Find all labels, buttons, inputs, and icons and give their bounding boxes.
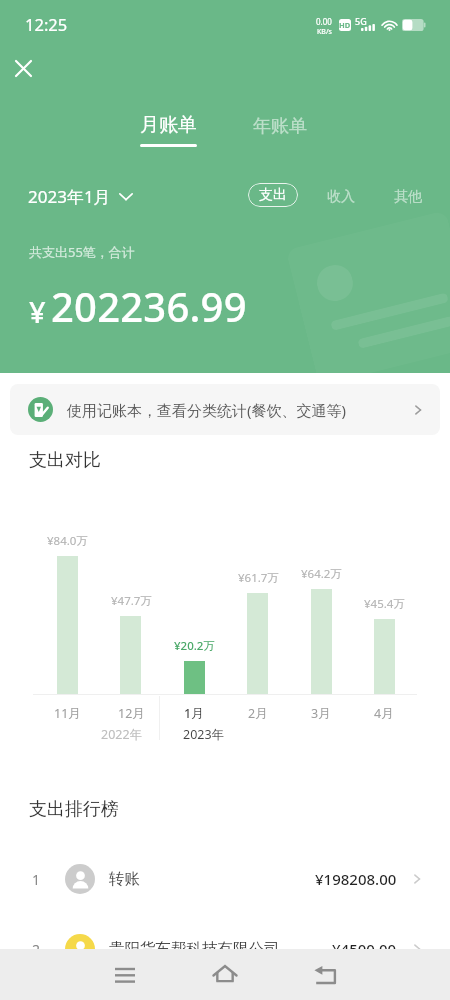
staticText: ¥198208.00 <box>315 869 397 889</box>
staticText: 月账单 <box>140 113 197 137</box>
staticText: ¥20.2万 <box>174 638 215 654</box>
staticText: 2023年1月 <box>28 185 111 208</box>
button[interactable]: Recent apps <box>75 949 175 1000</box>
staticText: 支出排行榜 <box>29 798 119 821</box>
staticText: 使用记账本，查看分类统计(餐饮、交通等) <box>67 400 347 420</box>
staticText: 5G <box>355 15 367 27</box>
button[interactable]: 支出 <box>248 183 298 207</box>
staticText: ¥47.7万 <box>111 593 152 609</box>
button[interactable]: Close <box>10 55 36 81</box>
staticText: 1月 <box>184 705 204 722</box>
staticText: 贵阳货车帮科技有限公司 <box>109 939 280 959</box>
button[interactable]: 其他 <box>389 186 427 208</box>
staticText: 收入 <box>327 188 355 206</box>
staticText: 年账单 <box>253 115 307 138</box>
button[interactable]: Back <box>275 949 375 1000</box>
staticText: 2022年 <box>101 726 143 743</box>
button[interactable]: 月账单 <box>132 107 205 153</box>
button[interactable]: 2023年1月 <box>22 181 139 212</box>
staticText: 12月 <box>118 705 145 722</box>
staticText: 2 <box>32 940 41 959</box>
staticText: ¥45.4万 <box>364 596 405 612</box>
staticText: KB/s <box>317 27 332 37</box>
button[interactable]: 使用记账本，查看分类统计(餐饮、交通等) <box>10 384 440 435</box>
staticText: 3月 <box>311 705 331 722</box>
button[interactable]: 收入 <box>322 186 360 208</box>
staticText: 支出对比 <box>29 449 101 472</box>
staticText: 12:25 <box>25 13 68 35</box>
staticText: 转账 <box>109 869 140 889</box>
staticText: 共支出55笔，合计 <box>29 243 135 261</box>
button[interactable]: 2 <box>0 914 450 984</box>
staticText: ¥84.0万 <box>47 533 88 549</box>
staticText: 0.00 <box>316 16 332 27</box>
staticText: ¥ <box>29 292 46 331</box>
staticText: 2月 <box>248 705 268 722</box>
staticText: 4月 <box>374 705 394 722</box>
staticText: 11月 <box>54 705 81 722</box>
staticText: 202236.99 <box>51 279 247 333</box>
staticText: 1 <box>32 870 41 889</box>
staticText: ¥64.2万 <box>301 566 342 582</box>
button[interactable]: 1 <box>0 844 450 914</box>
staticText: 支出 <box>259 186 287 204</box>
staticText: ¥61.7万 <box>238 570 279 586</box>
staticText: HD <box>339 20 351 30</box>
staticText: 其他 <box>394 188 422 206</box>
staticText: ¥4500.00 <box>332 939 397 959</box>
button[interactable]: 年账单 <box>245 113 315 140</box>
staticText: 2023年 <box>183 726 225 743</box>
button[interactable]: Home <box>175 949 275 1000</box>
